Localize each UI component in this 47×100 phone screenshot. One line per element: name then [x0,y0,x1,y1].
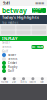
button[interactable]: Home [0,77,9,84]
staticText: IN-PLAY [2,36,18,41]
button[interactable]: Golf [0,69,47,73]
staticText: LOG IN [33,5,41,16]
button[interactable]: Menu [42,8,46,13]
button[interactable]: More [28,77,38,84]
staticText: Live [12,80,17,84]
staticText: Golf [2,50,8,53]
button[interactable]: Bets [19,77,28,84]
button[interactable]: Soccer [0,53,47,57]
staticText: BET NOW [31,45,44,49]
staticText: Soccer [2,41,10,44]
staticText: Today's Highlights [2,15,39,20]
button[interactable]: Cricket [0,61,47,65]
staticText: Me [40,80,44,84]
staticText: Tennis [8,57,17,61]
staticText: Soccer [8,53,16,57]
staticText: Bets [20,80,26,84]
button[interactable]: Tennis [0,57,47,61]
staticText: ≡≡≡ [35,1,44,5]
staticText: Golf [8,69,14,73]
button[interactable]: Rugby [0,65,47,69]
staticText: Tennis [2,45,11,49]
staticText: Home [1,80,9,84]
staticText: Top matches [2,21,18,24]
staticText: 9:41 [3,0,10,6]
button[interactable]: BET NOW [31,45,44,49]
button[interactable]: LOG IN [32,8,42,13]
button[interactable]: Live [9,77,19,84]
staticText: Cricket [8,61,17,65]
staticText: More [29,80,36,84]
staticText: betway [2,6,27,15]
button[interactable]: Me [38,77,47,84]
staticText: Rugby [8,65,17,69]
